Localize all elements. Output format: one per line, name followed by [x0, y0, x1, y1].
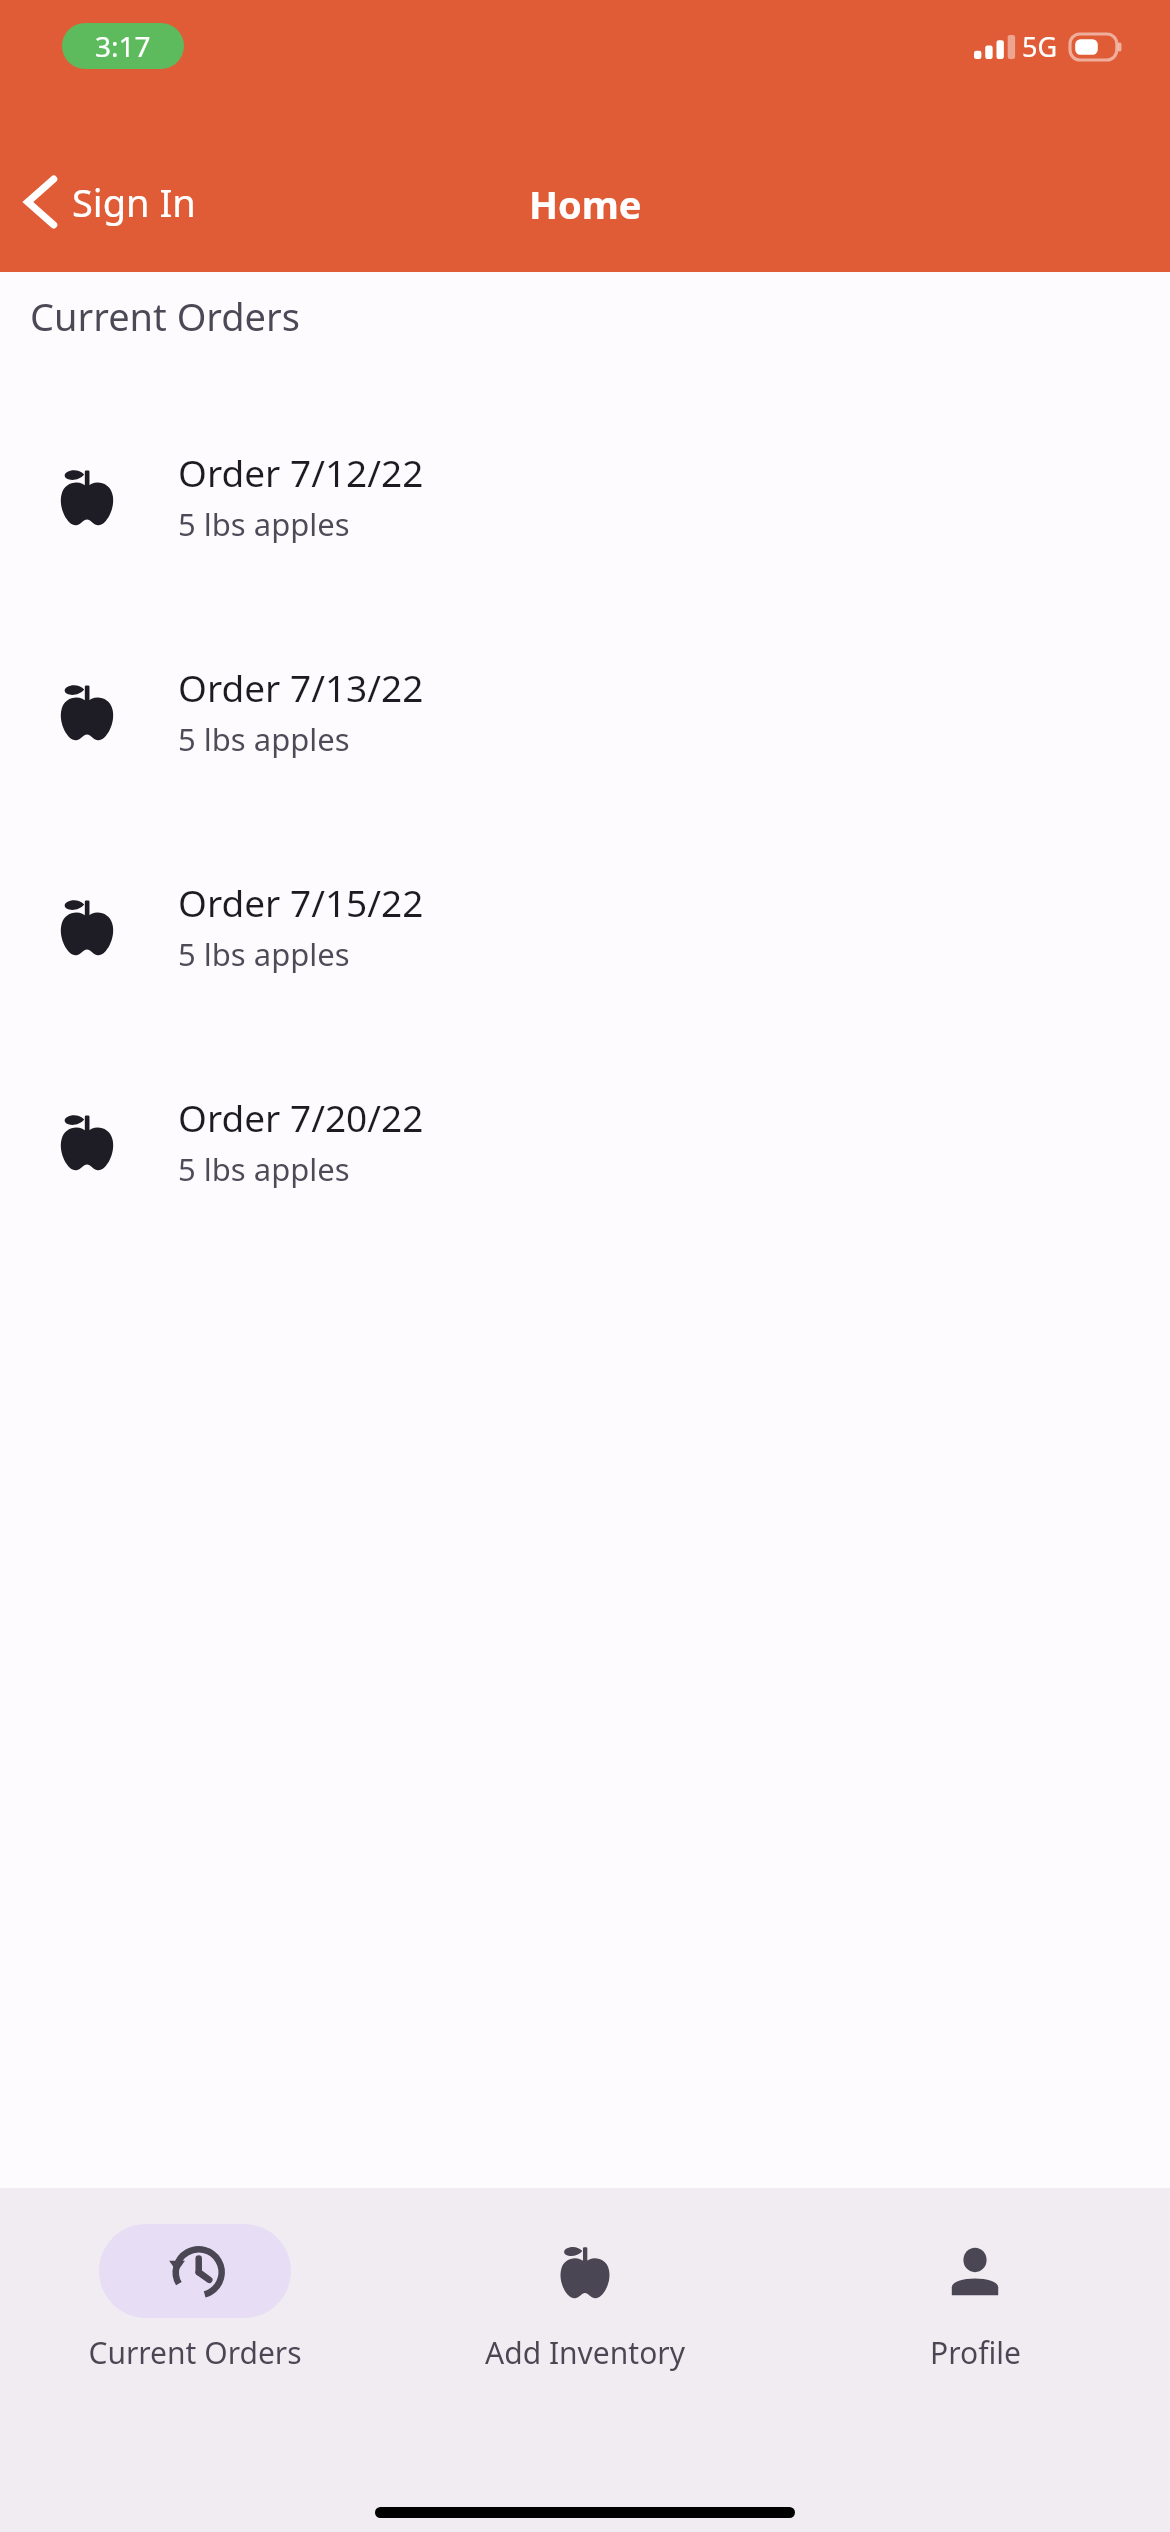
- staticText: Current Orders: [88, 2332, 302, 2373]
- staticText: 5 lbs apples: [178, 718, 350, 760]
- staticText: 5 lbs apples: [178, 933, 350, 975]
- staticText: 5 lbs apples: [178, 1148, 350, 1190]
- button[interactable]: Order 7/13/22: [0, 603, 1170, 818]
- staticText: Profile: [930, 2332, 1021, 2373]
- staticText: Add Inventory: [485, 2332, 685, 2373]
- button[interactable]: Order 7/20/22: [0, 1033, 1170, 1248]
- staticText: 5G: [1022, 28, 1058, 65]
- button[interactable]: Sign In: [0, 168, 212, 236]
- other: Profile: [946, 2242, 1004, 2300]
- button[interactable]: Profile: [780, 2224, 1170, 2373]
- button[interactable]: Order 7/12/22: [0, 388, 1170, 603]
- button[interactable]: Order 7/15/22: [0, 818, 1170, 1033]
- staticText: Order 7/20/22: [178, 1092, 424, 1142]
- staticText: Order 7/15/22: [178, 877, 424, 927]
- staticText: Order 7/13/22: [178, 662, 424, 712]
- staticText: Order 7/12/22: [178, 447, 424, 497]
- staticText: 5 lbs apples: [178, 503, 350, 545]
- staticText: Sign In: [72, 176, 196, 228]
- button[interactable]: Current Orders: [0, 2224, 390, 2373]
- staticText: Home: [529, 178, 642, 230]
- button[interactable]: Add Inventory: [390, 2224, 780, 2373]
- staticText: Current Orders: [30, 290, 300, 342]
- staticText: 3:17: [95, 27, 151, 65]
- other: Current Orders: [164, 2240, 226, 2302]
